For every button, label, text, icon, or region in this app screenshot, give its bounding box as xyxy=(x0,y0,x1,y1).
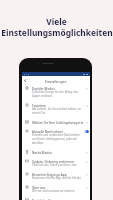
button[interactable]: Back xyxy=(22,77,29,84)
staticText: Bestimmen Sie die App und die Inhalte xyxy=(32,176,81,180)
button[interactable]: Update: Ordnung verfeinern xyxy=(22,157,90,170)
staticText: Dunkler Modus xyxy=(32,87,55,91)
button[interactable]: Open xyxy=(85,104,89,108)
staticText: Viele xyxy=(46,16,67,27)
staticText: abrufbar. xyxy=(32,141,44,145)
staticText: Profil mit den Daten von Ihrer Liste xyxy=(32,163,77,167)
staticText: Wählen Sie Ihre Lieblingskategorie xyxy=(32,121,84,125)
staticText: von Ihrem Lieblingsportal, jederzeit xyxy=(32,137,77,141)
staticText: Über uns xyxy=(32,186,46,190)
staticText: Augen entlastet. xyxy=(32,94,53,98)
staticText: Schnelle und verlässliche Nachrichten xyxy=(32,133,80,137)
button[interactable]: Open xyxy=(85,87,89,91)
button[interactable]: Favoriten xyxy=(22,101,90,118)
staticText: Aktuelle Nachrichten xyxy=(32,130,64,134)
button[interactable]: Open xyxy=(85,160,89,164)
button[interactable]: Open xyxy=(85,186,89,190)
button[interactable]: Aktuelle Nachrichten xyxy=(22,127,90,148)
staticText: Alle Inhalte, die Sie markiert haben, an xyxy=(32,107,81,111)
button[interactable]: Open xyxy=(85,151,89,155)
button[interactable]: Toggle xyxy=(84,130,89,133)
staticText: einem Ort. xyxy=(32,111,46,115)
staticText: Update: Ordnung verfeinern xyxy=(32,160,75,164)
button[interactable]: Wählen Sie Ihre Lieblingskategorie xyxy=(22,118,90,127)
button[interactable]: Über uns xyxy=(22,183,90,196)
staticText: Wer wir sind und was wir machen xyxy=(32,189,75,193)
button[interactable]: Benachrichtigungs-App xyxy=(22,170,90,183)
staticText: Benachrichtigungs-App xyxy=(32,173,67,177)
button[interactable]: Rechtliche Hinweise xyxy=(22,196,90,200)
staticText: Einstellungsmöglichkeiten xyxy=(1,27,113,38)
button[interactable]: Open xyxy=(85,173,89,177)
staticText: Einstellungen xyxy=(45,79,67,83)
button[interactable]: Open xyxy=(85,121,89,125)
staticText: Rechtliche Hinweise xyxy=(32,199,62,200)
button[interactable]: Nacht-Modus xyxy=(22,148,90,157)
staticText: Schlichtes Design für den Alltag, das xyxy=(32,90,78,94)
staticText: Favoriten xyxy=(32,104,46,108)
staticText: Nacht-Modus xyxy=(32,151,52,155)
button[interactable]: Dunkler Modus xyxy=(22,84,90,101)
